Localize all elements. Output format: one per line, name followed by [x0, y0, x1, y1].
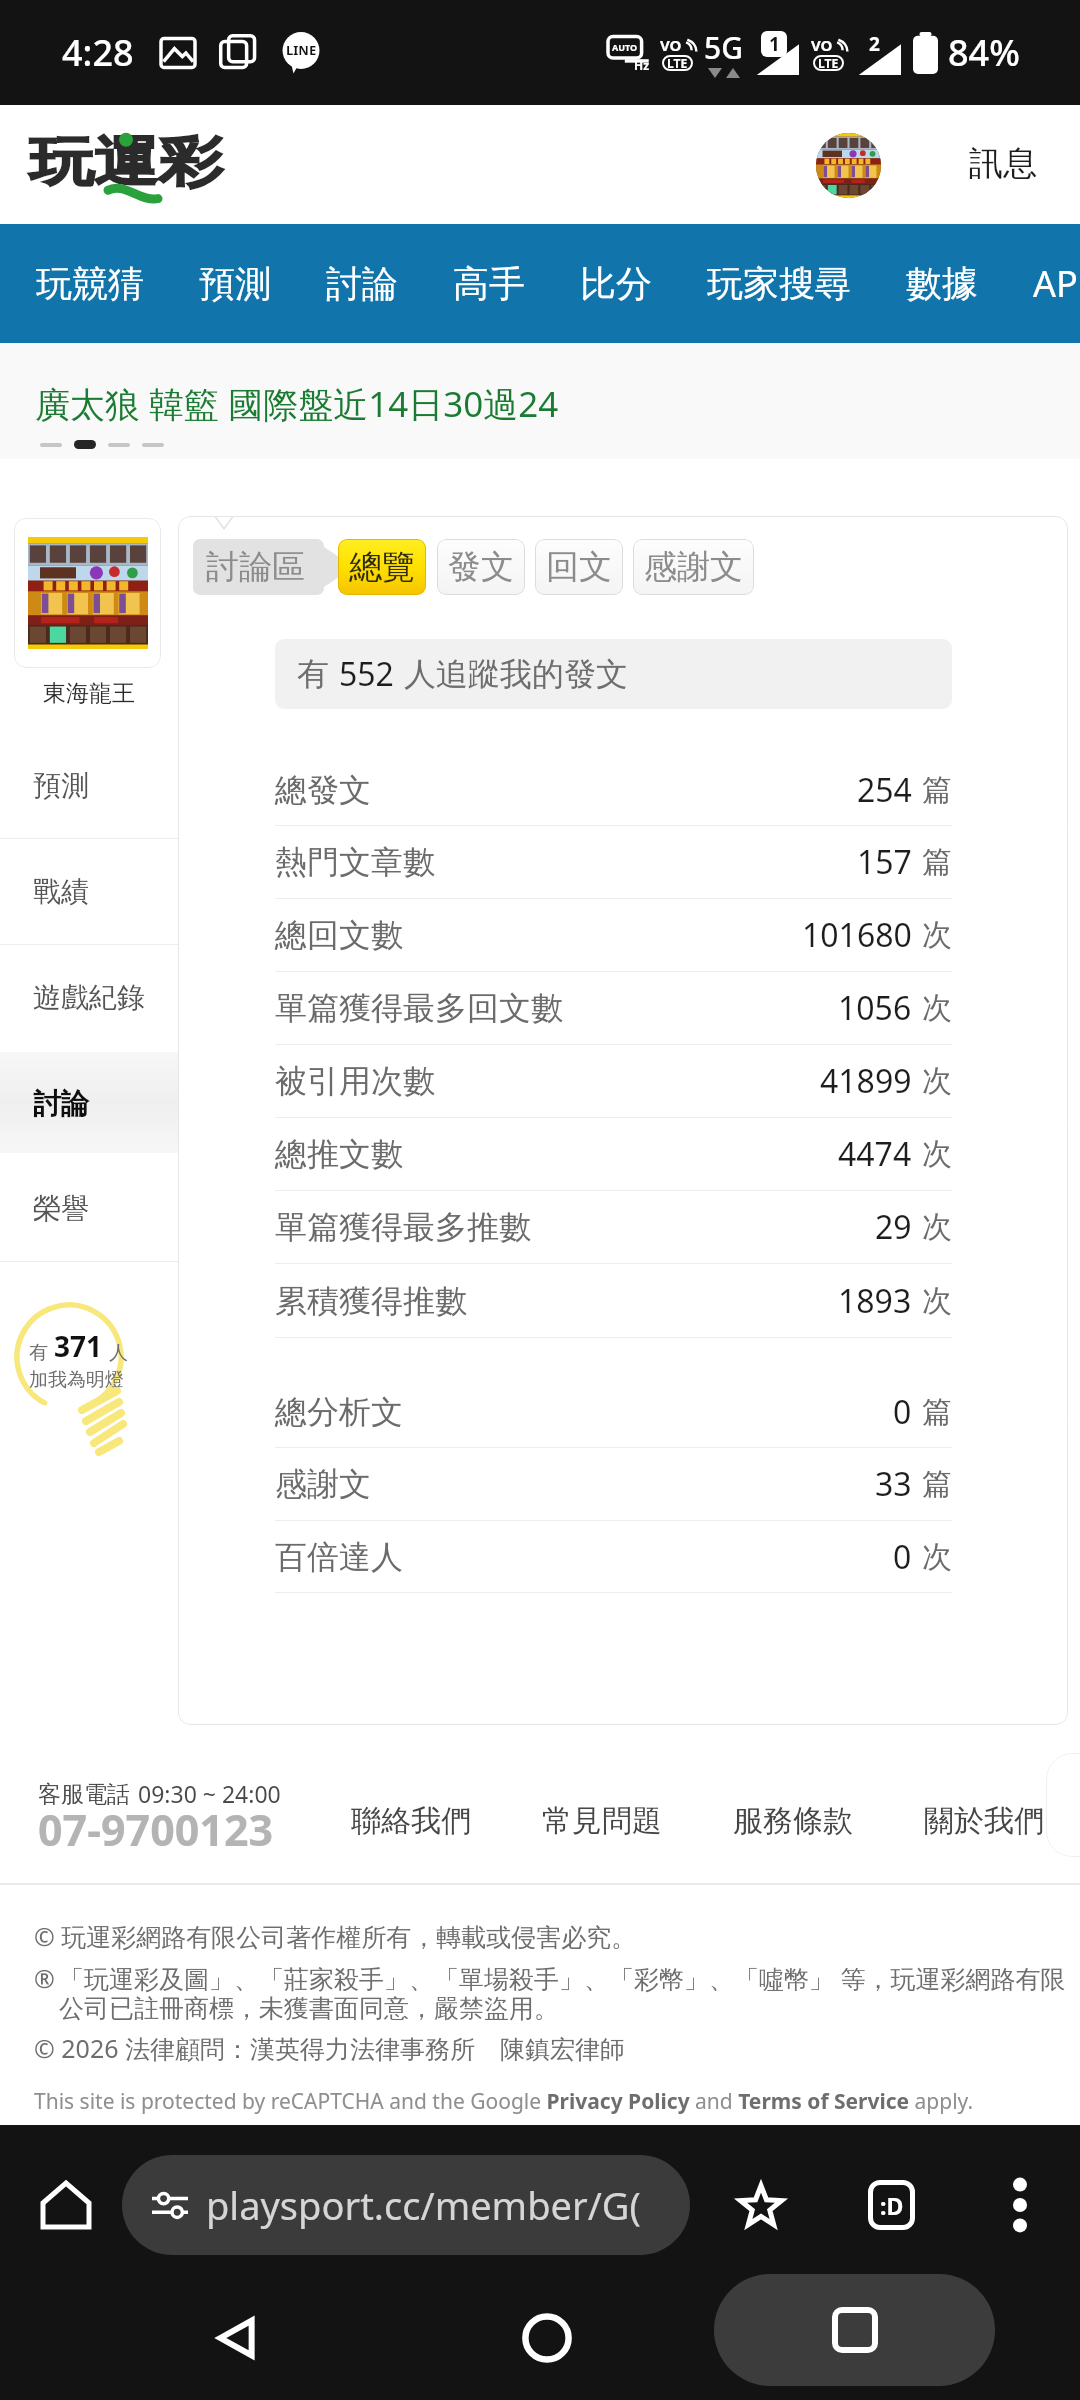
- staticText: 討論區: [206, 546, 305, 588]
- staticText: 次: [922, 1062, 952, 1100]
- button[interactable]: Home: [497, 2288, 597, 2388]
- staticText: © 玩運彩網路有限公司著作權所有，轉載或侵害必究。: [34, 1919, 637, 1953]
- button[interactable]: 預測: [0, 732, 178, 838]
- staticText: 次: [922, 1282, 952, 1320]
- staticText: 4:28: [62, 28, 134, 77]
- button[interactable]: More options: [994, 2175, 1046, 2235]
- staticText: 回文: [546, 546, 612, 588]
- button[interactable]: 聯絡我們: [351, 1802, 471, 1840]
- staticText: 篇: [922, 771, 952, 809]
- staticText: 總分析文: [275, 1392, 403, 1432]
- button[interactable]: playsport.cc/member/G(: [122, 2155, 690, 2255]
- button[interactable]: 高手: [453, 261, 525, 306]
- staticText: 討論: [326, 261, 398, 306]
- staticText: 關於我們: [924, 1802, 1044, 1840]
- staticText: 發文: [448, 546, 514, 588]
- staticText: 預測: [199, 261, 271, 306]
- staticText: 百倍達人: [275, 1537, 403, 1577]
- button[interactable]: 關於我們: [924, 1802, 1044, 1840]
- button[interactable]: 有: [0, 1269, 178, 1499]
- button[interactable]: APP: [1033, 259, 1080, 308]
- button[interactable]: 玩運彩: [26, 123, 226, 207]
- staticText: 感謝文: [644, 546, 743, 588]
- button[interactable]: 廣太狼 韓籃 國際盤近14日30過24: [35, 380, 559, 428]
- staticText: 次: [922, 916, 952, 954]
- button[interactable]: 使用者頭像: [816, 133, 881, 198]
- staticText: 數據: [906, 261, 978, 306]
- staticText: 篇: [922, 1465, 952, 1503]
- staticText: 討論: [33, 1086, 89, 1121]
- staticText: LINE: [286, 41, 317, 59]
- staticText: 被引用次數: [275, 1061, 435, 1101]
- staticText: 有: [297, 654, 329, 694]
- button[interactable]: 常見問題: [542, 1802, 662, 1840]
- staticText: 感謝文: [275, 1464, 371, 1504]
- staticText: VO: [811, 35, 833, 55]
- staticText: 比分: [580, 261, 652, 306]
- button[interactable]: 發文: [437, 539, 525, 595]
- staticText: 人追蹤我的發文: [404, 654, 628, 694]
- button[interactable]: [14, 518, 161, 668]
- staticText: ®: [34, 1961, 55, 1995]
- button[interactable]: 討論區: [193, 539, 338, 595]
- button[interactable]: Home: [34, 2173, 98, 2237]
- staticText: 遊戲紀錄: [33, 980, 145, 1015]
- staticText: 101680: [802, 913, 912, 957]
- button[interactable]: 戰績: [0, 838, 178, 944]
- staticText: 「玩運彩及圖」、「莊家殺手」、「單場殺手」、「彩幣」、「噓幣」 等，玩運彩網路有…: [59, 1961, 1074, 2024]
- staticText: 人: [109, 1341, 128, 1365]
- button[interactable]: Back: [186, 2288, 286, 2388]
- staticText: 常見問題: [542, 1802, 662, 1840]
- staticText: 次: [922, 1135, 952, 1173]
- staticText: AUTO: [612, 41, 638, 53]
- button[interactable]: 遊戲紀錄: [0, 944, 178, 1050]
- staticText: 254: [857, 768, 912, 812]
- button[interactable]: 玩競猜: [36, 261, 144, 306]
- staticText: 單篇獲得最多回文數: [275, 988, 563, 1028]
- button[interactable]: 訊息: [966, 139, 1040, 188]
- staticText: LTE: [818, 55, 839, 71]
- staticText: 有: [29, 1341, 48, 1365]
- staticText: 1893: [838, 1279, 912, 1323]
- staticText: 371: [54, 1327, 103, 1365]
- staticText: 07-9700123: [38, 1800, 274, 1859]
- staticText: 0: [893, 1390, 912, 1434]
- button[interactable]: 玩家搜尋: [707, 261, 851, 306]
- button[interactable]: Tabs: [868, 2180, 915, 2230]
- button[interactable]: 服務條款: [733, 1802, 853, 1840]
- button[interactable]: 討論: [0, 1050, 178, 1156]
- staticText: 篇: [922, 843, 952, 881]
- staticText: 訊息: [969, 142, 1037, 185]
- staticText: 次: [922, 1208, 952, 1246]
- staticText: 玩競猜: [36, 261, 144, 306]
- button[interactable]: Bookmark: [729, 2173, 793, 2237]
- staticText: 1056: [838, 986, 912, 1030]
- staticText: LTE: [667, 55, 688, 71]
- staticText: 玩運彩: [29, 129, 223, 197]
- button[interactable]: 感謝文: [633, 539, 754, 595]
- staticText: 榮譽: [33, 1191, 89, 1226]
- staticText: 次: [922, 989, 952, 1027]
- staticText: 總覽: [349, 546, 415, 588]
- staticText: 單篇獲得最多推數: [275, 1207, 531, 1247]
- staticText: 1: [769, 31, 780, 57]
- button[interactable]: 回文: [535, 539, 623, 595]
- button[interactable]: 比分: [580, 261, 652, 306]
- staticText: VO: [660, 35, 682, 55]
- staticText: 熱門文章數: [275, 842, 435, 882]
- button[interactable]: Recents: [714, 2274, 995, 2386]
- staticText: 加我為明燈: [29, 1368, 124, 1392]
- staticText: 84%: [948, 28, 1020, 77]
- staticText: 41899: [820, 1059, 912, 1103]
- staticText: 客服電話: [38, 1780, 130, 1809]
- staticText: © 2026 法律顧問：漢英得力法律事務所 陳鎮宏律師: [34, 2031, 626, 2065]
- staticText: 2: [869, 31, 880, 57]
- button[interactable]: 預測: [199, 261, 271, 306]
- staticText: 552: [339, 652, 394, 696]
- button[interactable]: 總覽: [338, 539, 426, 595]
- staticText: 4474: [838, 1132, 912, 1176]
- button[interactable]: 討論: [326, 261, 398, 306]
- button[interactable]: 數據: [906, 261, 978, 306]
- staticText: 29: [875, 1205, 912, 1249]
- button[interactable]: 榮譽: [0, 1155, 178, 1261]
